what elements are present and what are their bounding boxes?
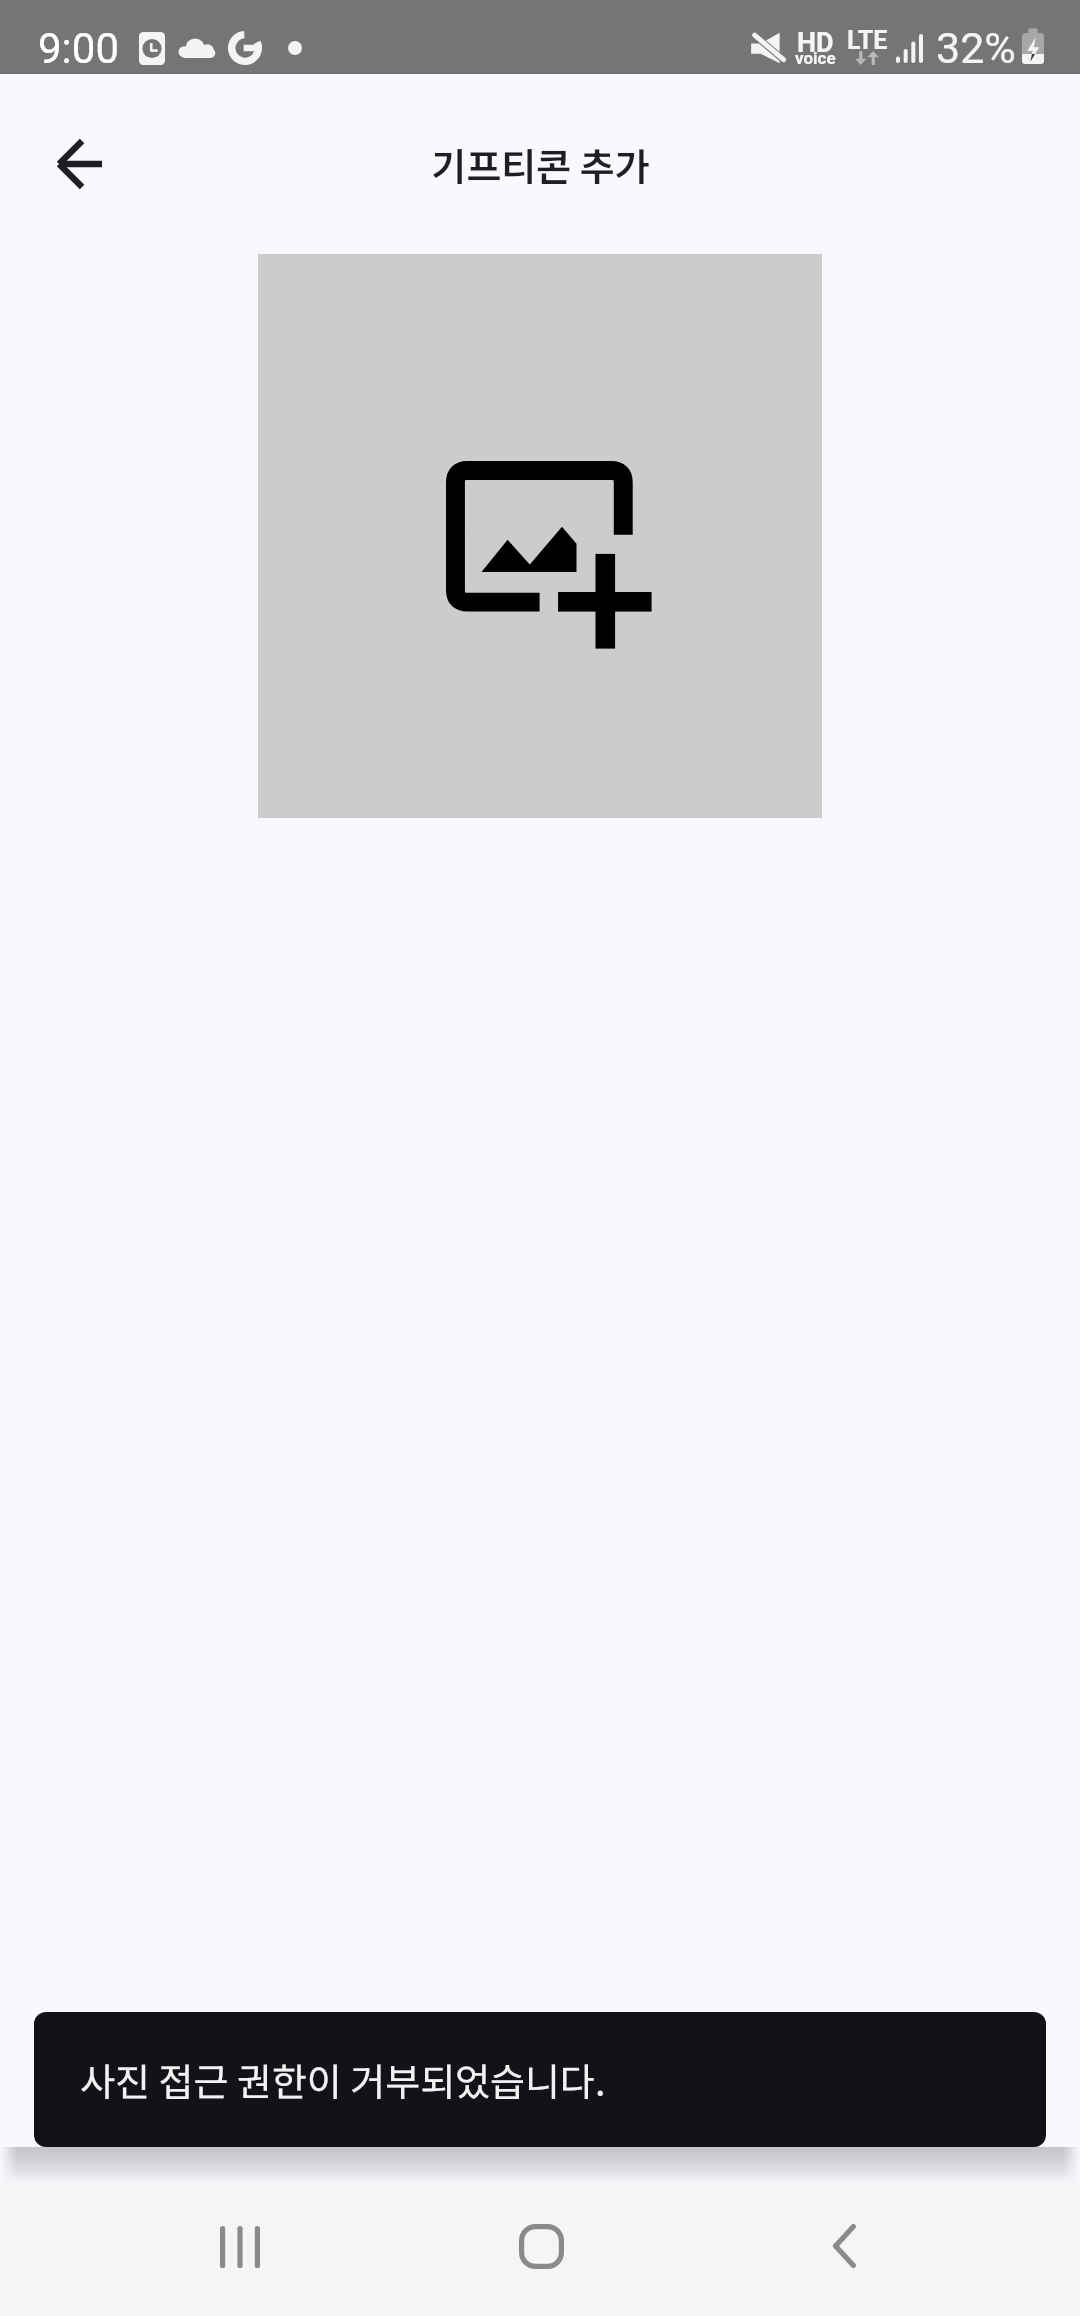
staticText: 32%	[936, 23, 1016, 73]
button[interactable]: 사진 접근 권한이 거부되었습니다.	[34, 2012, 1046, 2147]
button[interactable]: Add photo	[258, 254, 822, 818]
button[interactable]: Back	[766, 2181, 922, 2316]
staticText: 9:00	[38, 24, 119, 73]
staticText: voice	[795, 48, 836, 68]
staticText: 사진 접근 권한이 거부되었습니다.	[80, 2052, 606, 2107]
button[interactable]: Recent apps	[162, 2181, 318, 2316]
staticText: HD	[797, 27, 834, 59]
button[interactable]: Home	[463, 2181, 619, 2316]
staticText: LTE	[847, 26, 888, 55]
button[interactable]: Back	[31, 116, 127, 212]
staticText: 기프티콘 추가	[431, 137, 650, 192]
